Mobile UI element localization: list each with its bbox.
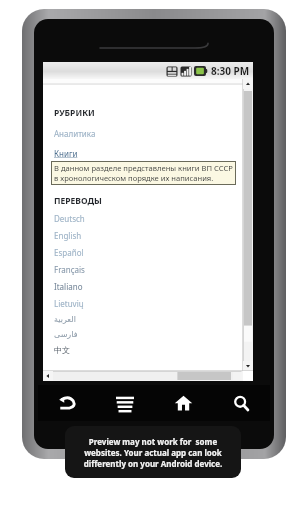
button[interactable]: Menu [96,385,154,421]
staticText: Français [54,264,85,275]
button[interactable]: Back [38,385,96,421]
staticText: Книги [54,148,78,159]
staticText: English [54,230,82,241]
button[interactable]: Italiano [54,281,83,292]
staticText: В данном разделе представлены книги ВП С… [54,163,233,183]
staticText: العربية [54,315,76,324]
staticText: 中文 [54,345,70,355]
staticText: РУБРИКИ [54,107,95,119]
staticText: Preview may not work for some websites. … [74,436,232,469]
button[interactable]: English [54,230,82,241]
button[interactable]: Français [54,264,85,275]
button[interactable]: Home [154,385,212,421]
staticText: Deutsch [54,213,85,224]
staticText: Italiano [54,281,83,292]
button[interactable]: Аналитика [54,128,96,139]
button[interactable]: Español [54,247,84,258]
button[interactable]: Lietuvių [54,298,84,309]
button[interactable]: العربية [54,315,76,324]
button[interactable]: فارسی [54,330,78,339]
staticText: Español [54,247,84,258]
button[interactable]: Search [212,385,270,421]
staticText: Аналитика [54,128,96,139]
staticText: Lietuvių [54,298,84,309]
button[interactable]: Книги [54,148,78,159]
button[interactable]: 中文 [54,345,70,355]
button[interactable]: Deutsch [54,213,85,224]
staticText: فارسی [54,330,78,339]
staticText: 8:30 PM [211,64,250,78]
staticText: ПЕРЕВОДЫ [54,195,102,207]
